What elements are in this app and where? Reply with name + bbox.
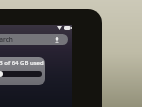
staticText: Search	[0, 35, 13, 44]
button[interactable]: Voice search	[53, 36, 61, 44]
button[interactable]: 17 GB of 64 GB used	[0, 57, 45, 85]
button[interactable]: Search	[0, 34, 68, 45]
staticText: 17 GB of 64 GB used	[0, 59, 44, 67]
